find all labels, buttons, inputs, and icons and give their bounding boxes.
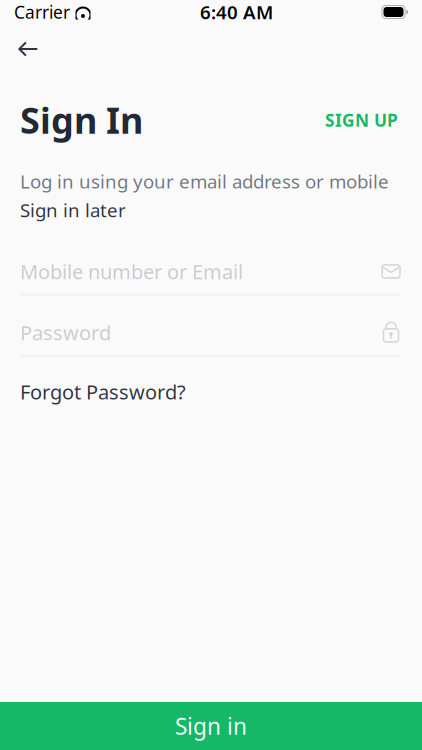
staticText: Sign in	[175, 711, 247, 741]
staticText: Carrier	[14, 0, 70, 23]
staticText: Password	[20, 319, 111, 346]
staticText: Log in using your email address or mobil…	[20, 169, 389, 194]
button[interactable]: Sign in	[0, 702, 422, 750]
staticText: Mobile number or Email	[20, 258, 243, 285]
staticText: 6:40 AM	[200, 0, 273, 24]
staticText: Sign in later	[20, 198, 126, 222]
staticText: Forgot Password?	[20, 378, 186, 405]
button[interactable]: Back	[6, 27, 50, 71]
staticText: Sign In	[20, 96, 143, 144]
button[interactable]: Sign in later	[20, 198, 126, 222]
button[interactable]: SIGN UP	[321, 102, 402, 137]
button[interactable]: Forgot Password?	[20, 374, 186, 409]
staticText: SIGN UP	[325, 108, 398, 131]
